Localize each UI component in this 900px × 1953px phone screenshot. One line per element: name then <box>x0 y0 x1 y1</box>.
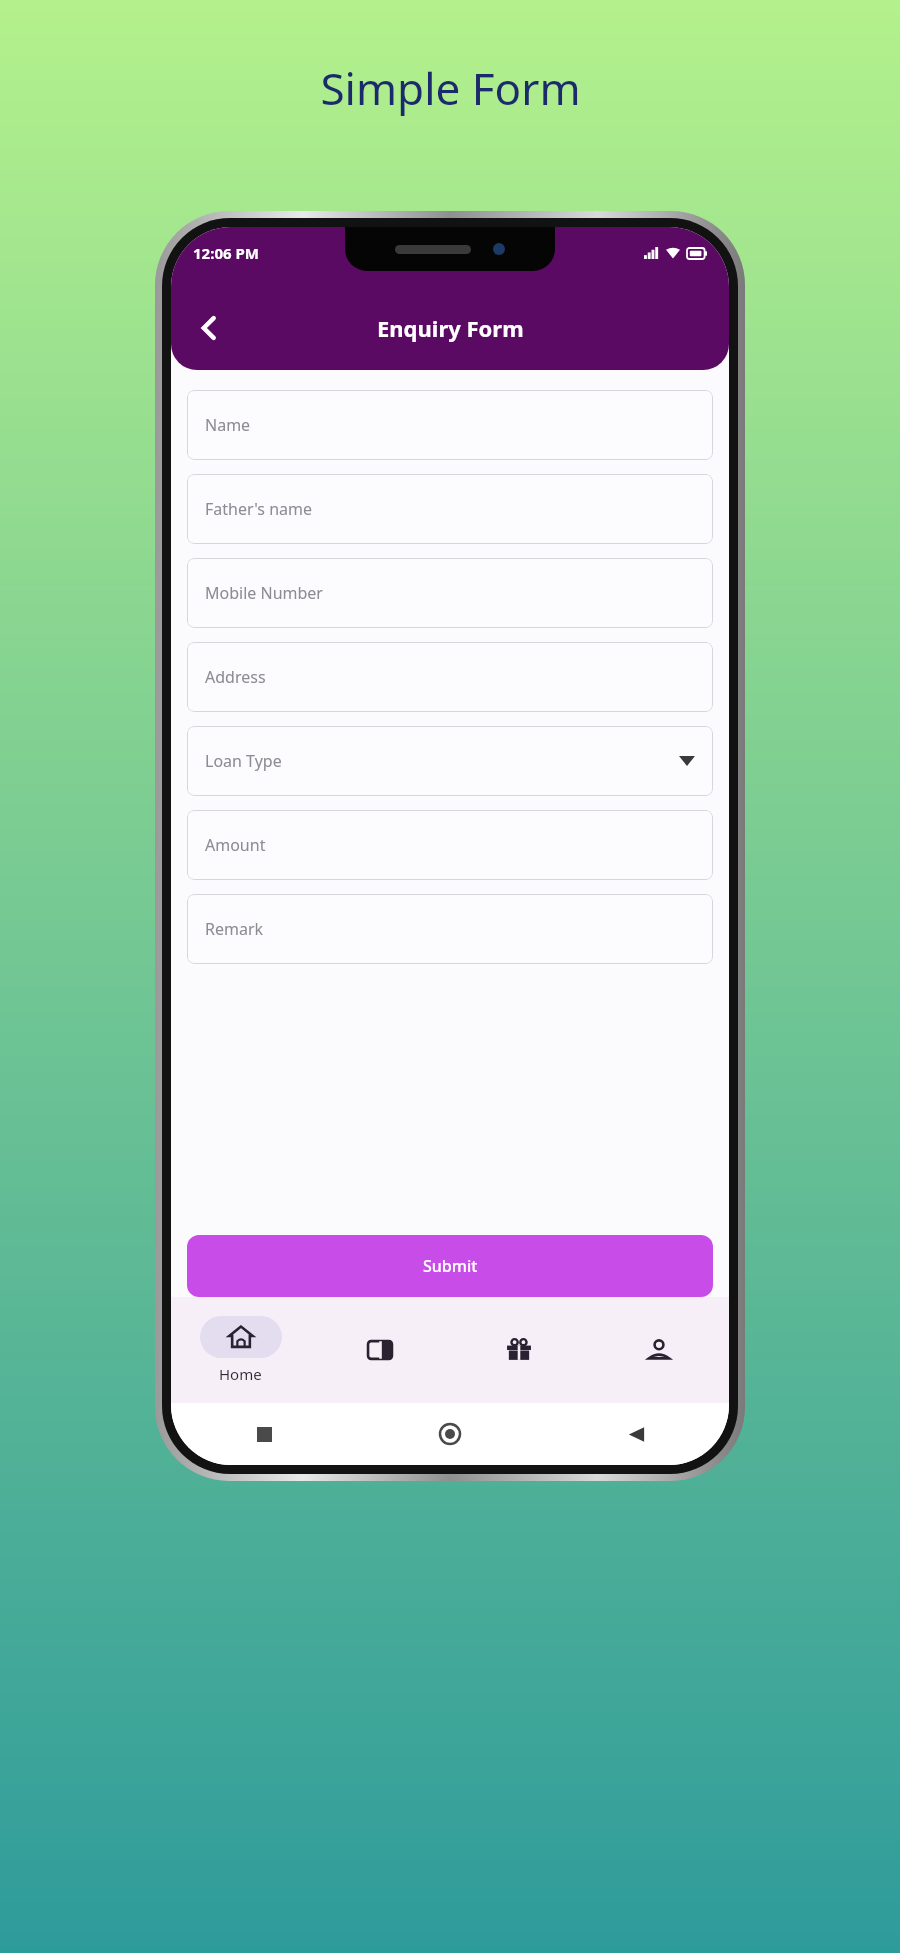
button[interactable]: Back <box>183 302 235 354</box>
button[interactable]: Profile <box>589 1297 729 1403</box>
staticText: Name <box>205 414 251 436</box>
staticText: Amount <box>205 834 266 856</box>
staticText: Mobile Number <box>205 582 323 604</box>
button[interactable]: Home <box>440 1424 460 1444</box>
button[interactable]: Back <box>628 1426 645 1443</box>
button[interactable]: Submit <box>187 1235 713 1297</box>
button[interactable]: Mobile Number <box>187 558 713 628</box>
staticText: Simple Form <box>320 58 581 118</box>
staticText: 12:06 PM <box>193 243 259 263</box>
button[interactable]: Amount <box>187 810 713 880</box>
button[interactable]: Loan Type <box>187 726 713 796</box>
staticText: Submit <box>423 1255 478 1277</box>
staticText: Father's name <box>205 498 313 520</box>
button[interactable]: Offers <box>449 1297 589 1403</box>
staticText: Loan Type <box>205 750 282 772</box>
button[interactable]: Father's name <box>187 474 713 544</box>
staticText: Home <box>219 1364 262 1384</box>
button[interactable]: Name <box>187 390 713 460</box>
button[interactable]: Home <box>171 1297 310 1403</box>
button[interactable]: Remark <box>187 894 713 964</box>
button[interactable]: Address <box>187 642 713 712</box>
button[interactable]: Cards <box>310 1297 449 1403</box>
staticText: Enquiry Form <box>377 313 524 343</box>
staticText: Address <box>205 666 266 688</box>
staticText: Remark <box>205 918 264 940</box>
